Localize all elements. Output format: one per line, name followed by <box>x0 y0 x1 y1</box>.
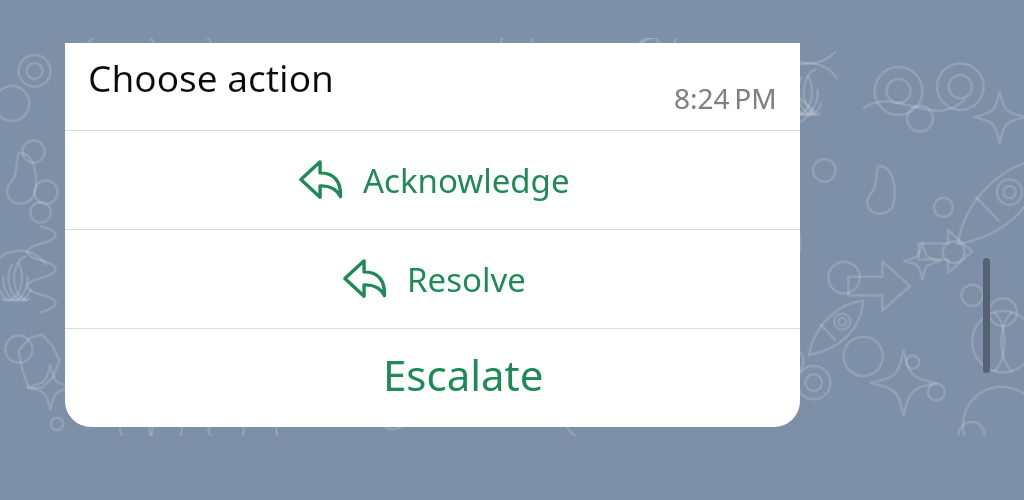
other: Acknowledge <box>299 160 343 199</box>
staticText: Resolve <box>407 257 526 302</box>
other: Resolve <box>343 259 387 298</box>
staticText: 8:24 PM <box>674 79 777 117</box>
staticText: Choose action <box>88 52 334 102</box>
staticText: Escalate <box>383 346 544 403</box>
other: Scroll position <box>983 258 990 373</box>
button[interactable]: Escalate <box>65 329 800 427</box>
button[interactable]: Resolve <box>65 230 800 328</box>
staticText: Acknowledge <box>363 158 570 203</box>
button[interactable]: Acknowledge <box>65 131 800 229</box>
